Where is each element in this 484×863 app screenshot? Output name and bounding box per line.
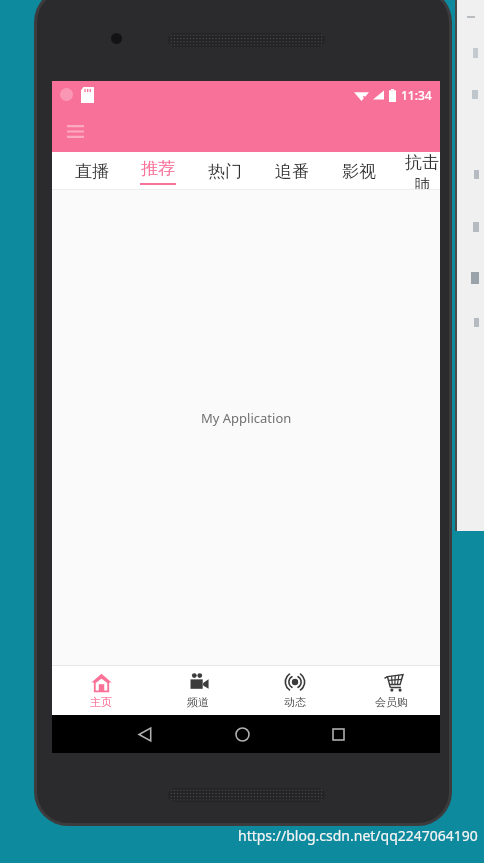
staticText: 会员购 [375,695,408,709]
button[interactable]: 抗击肺 [400,152,444,190]
staticText: 直播 [75,161,109,182]
staticText: 主页 [90,695,112,709]
staticText: 频道 [187,695,209,709]
button[interactable]: 追番 [266,152,318,190]
button[interactable]: 直播 [66,152,118,190]
button[interactable]: 会员购 [343,665,440,715]
button[interactable]: 热门 [199,152,251,190]
button[interactable]: 主页 [52,665,149,715]
staticText: 抗击肺 [400,152,444,190]
button[interactable]: 影视 [333,152,385,190]
button[interactable]: 动态 [246,665,343,715]
staticText: 推荐 [141,158,175,179]
staticText: My Application [201,409,292,427]
button[interactable]: 频道 [149,665,246,715]
staticText: https://blog.csdn.net/qq2247064190 [238,826,478,845]
staticText: 11:34 [401,87,432,103]
staticText: 热门 [208,161,242,182]
staticText: 追番 [275,161,309,182]
button[interactable]: 推荐 [132,152,184,190]
staticText: 动态 [284,695,306,709]
button[interactable]: Menu [62,118,88,144]
staticText: 影视 [342,161,376,182]
